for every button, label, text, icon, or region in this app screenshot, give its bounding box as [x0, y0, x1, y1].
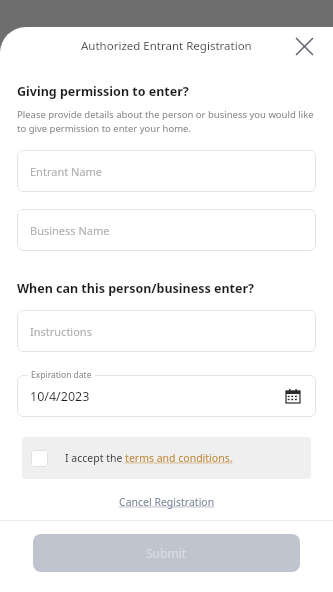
staticText: When can this person/business enter? [17, 280, 254, 297]
button[interactable]: Submit [33, 534, 300, 572]
staticText: Instructions [30, 324, 92, 339]
button[interactable]: Pick date [283, 386, 303, 406]
staticText: Cancel Registration [119, 495, 215, 509]
button[interactable]: 10/4/2023 [17, 375, 316, 417]
staticText: Submit [146, 545, 187, 561]
staticText: Business Name [30, 223, 110, 238]
button[interactable]: Business Name [17, 209, 316, 251]
button[interactable]: Instructions [17, 310, 316, 352]
staticText: Giving permission to enter? [17, 83, 189, 100]
button[interactable]: Entrant Name [17, 150, 316, 192]
staticText: I accept the terms and conditions. [65, 451, 233, 465]
staticText: 10/4/2023 [30, 388, 90, 405]
button[interactable]: Close [289, 31, 319, 61]
button[interactable]: I accept the terms and conditions. [22, 437, 311, 479]
staticText: Entrant Name [30, 164, 103, 179]
staticText: Please provide details about the person … [17, 108, 316, 134]
button[interactable]: Cancel Registration [113, 492, 221, 512]
staticText: Authorized Entrant Registration [81, 38, 252, 54]
staticText: Expiration date [31, 369, 92, 381]
